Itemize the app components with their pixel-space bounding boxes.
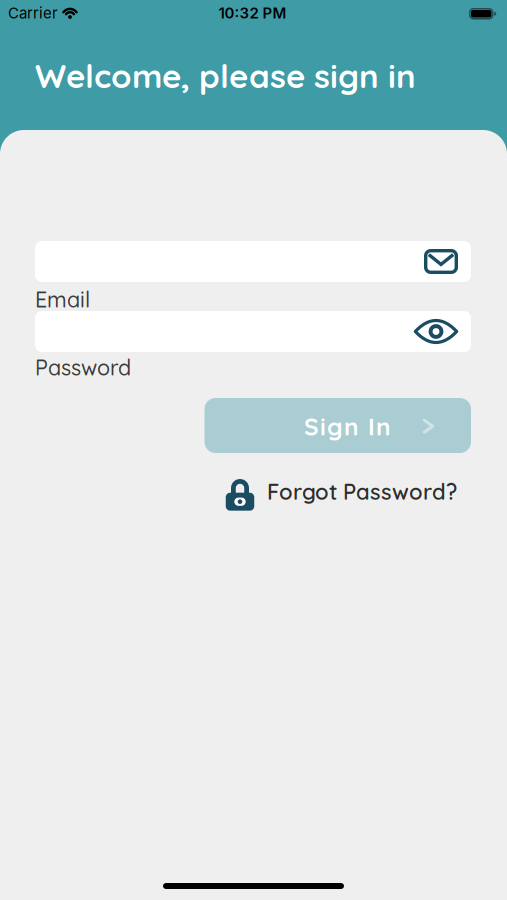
staticText: Welcome, please sign in xyxy=(35,55,416,96)
staticText: Sign In xyxy=(304,411,391,442)
button[interactable] xyxy=(35,311,471,352)
staticText: Email xyxy=(35,286,90,313)
staticText: Carrier xyxy=(8,4,58,22)
button[interactable]: Forgot Password? xyxy=(225,476,457,509)
staticText: Forgot Password? xyxy=(267,478,457,505)
staticText: Password xyxy=(35,354,131,381)
staticText: 10:32 PM xyxy=(218,4,286,22)
button[interactable] xyxy=(35,241,471,282)
button[interactable]: Sign In xyxy=(204,398,471,453)
